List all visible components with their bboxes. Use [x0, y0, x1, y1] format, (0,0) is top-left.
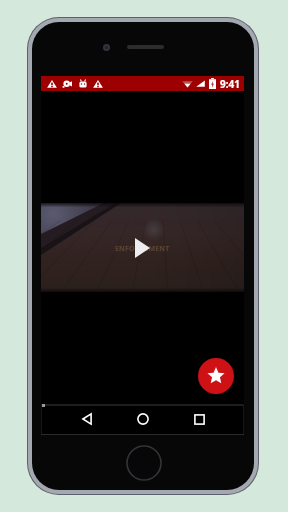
button[interactable]: Back — [69, 407, 105, 431]
button[interactable]: Recent apps — [181, 407, 217, 431]
button[interactable]: Favorite — [198, 358, 234, 394]
button[interactable]: Home — [125, 407, 161, 431]
staticText: 9:41 — [220, 77, 240, 91]
button[interactable]: Play video — [129, 235, 155, 261]
staticText: ENFORCEMENT — [115, 244, 170, 254]
